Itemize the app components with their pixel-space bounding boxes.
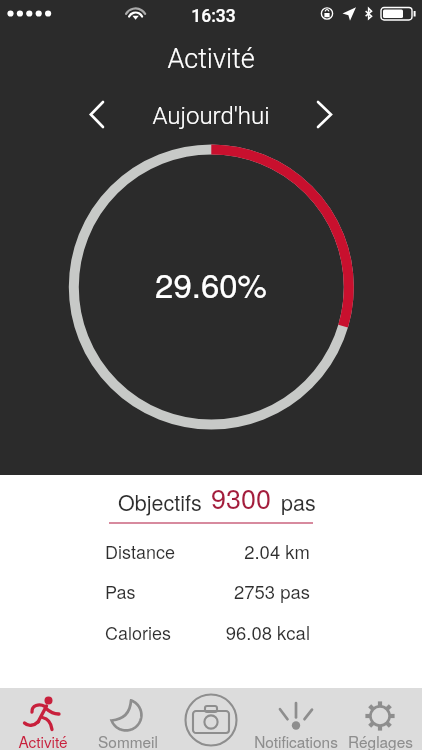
button[interactable]: Activité — [0, 688, 85, 750]
button[interactable]: Calories — [0, 612, 422, 644]
staticText: Sommeil — [98, 730, 158, 750]
button[interactable]: Pas — [0, 571, 422, 603]
staticText: Activité — [167, 43, 255, 75]
staticText: 16:33 — [191, 6, 236, 27]
staticText: Objectifs — [118, 486, 202, 517]
staticText: pas — [281, 486, 316, 517]
staticText: Notifications — [254, 730, 338, 750]
staticText: 2.04 km — [244, 538, 310, 564]
button[interactable]: Sommeil — [85, 688, 170, 750]
staticText: 9300 — [211, 478, 272, 517]
staticText: Activité — [18, 730, 68, 750]
staticText: Réglages — [348, 730, 413, 750]
button[interactable]: Appareil photo — [170, 688, 254, 750]
button[interactable]: Réglages — [338, 688, 422, 750]
staticText: 96.08 kcal — [225, 619, 310, 645]
button[interactable]: Notifications — [254, 688, 338, 750]
staticText: Distance — [105, 538, 175, 564]
staticText: Calories — [105, 619, 172, 645]
staticText: Pas — [105, 578, 136, 604]
staticText: 2753 pas — [233, 578, 310, 604]
staticText: Aujourd'hui — [152, 102, 270, 130]
button[interactable]: Jour suivant — [306, 96, 344, 134]
staticText: 29.60% — [155, 260, 267, 307]
button[interactable]: Distance — [0, 531, 422, 563]
button[interactable]: Aujourd'hui — [130, 98, 292, 132]
button[interactable]: Jour précédent — [78, 96, 116, 134]
